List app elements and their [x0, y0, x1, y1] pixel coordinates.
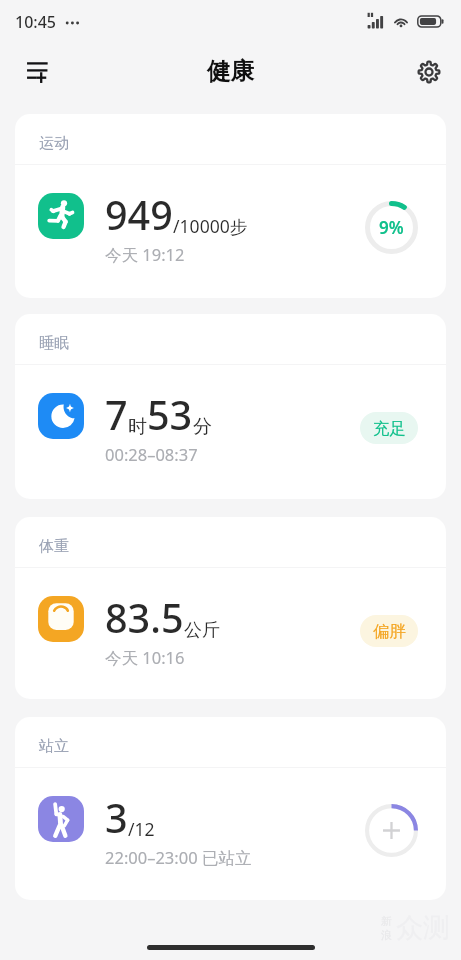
staticText: 53 — [147, 388, 193, 442]
staticText: 7 — [105, 388, 128, 442]
staticText: 偏胖 — [373, 621, 406, 642]
staticText: 浪 — [381, 928, 392, 942]
staticText: 体重 — [39, 537, 69, 556]
staticText: 今天 19:12 — [105, 243, 185, 266]
staticText: 新 — [381, 914, 392, 928]
staticText: 949 — [105, 188, 173, 242]
button[interactable]: 充足 — [360, 412, 418, 444]
staticText: 时 — [128, 415, 147, 439]
staticText: 今天 10:16 — [105, 646, 185, 669]
staticText: 健康 — [207, 56, 254, 86]
staticText: /10000步 — [173, 214, 248, 238]
staticText: 站立 — [39, 737, 69, 756]
staticText: 10:45 — [15, 11, 56, 33]
staticText: 睡眠 — [39, 334, 69, 353]
staticText: 3 — [105, 791, 128, 845]
staticText: 22:00–23:00 已站立 — [105, 846, 252, 869]
staticText: 9% — [379, 216, 404, 239]
staticText: 分 — [193, 415, 212, 439]
button[interactable]: 偏胖 — [360, 615, 418, 647]
button[interactable]: 站立 — [15, 717, 446, 900]
button[interactable]: Add stand record — [365, 804, 418, 857]
staticText: 运动 — [39, 134, 69, 153]
staticText: /12 — [128, 817, 155, 841]
button[interactable]: Settings — [405, 48, 453, 96]
button[interactable]: 睡眠 — [15, 314, 446, 499]
button[interactable]: Add record — [14, 48, 62, 96]
button[interactable]: 运动 — [15, 114, 446, 298]
button[interactable]: 体重 — [15, 517, 446, 699]
staticText: 00:28–08:37 — [105, 443, 198, 465]
staticText: 公斤 — [184, 619, 220, 642]
staticText: 83.5 — [105, 591, 184, 645]
staticText: 充足 — [373, 418, 406, 439]
